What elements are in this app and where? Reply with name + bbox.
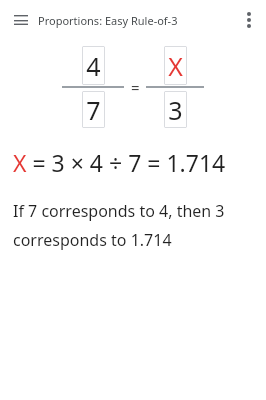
staticText: If 7 corresponds to 4, then 3 correspond…	[13, 200, 260, 250]
button[interactable]: Open navigation menu	[6, 5, 36, 35]
staticText: 7	[86, 93, 101, 127]
staticText: X	[168, 49, 183, 83]
staticText: 4	[86, 49, 101, 83]
staticText: X = 3 × 4 ÷ 7 = 1.714	[13, 147, 226, 178]
button[interactable]: More options	[234, 5, 264, 35]
staticText: =	[131, 77, 140, 97]
staticText: 3	[168, 93, 183, 127]
staticText: Proportions: Easy Rule-of-3	[38, 13, 178, 28]
